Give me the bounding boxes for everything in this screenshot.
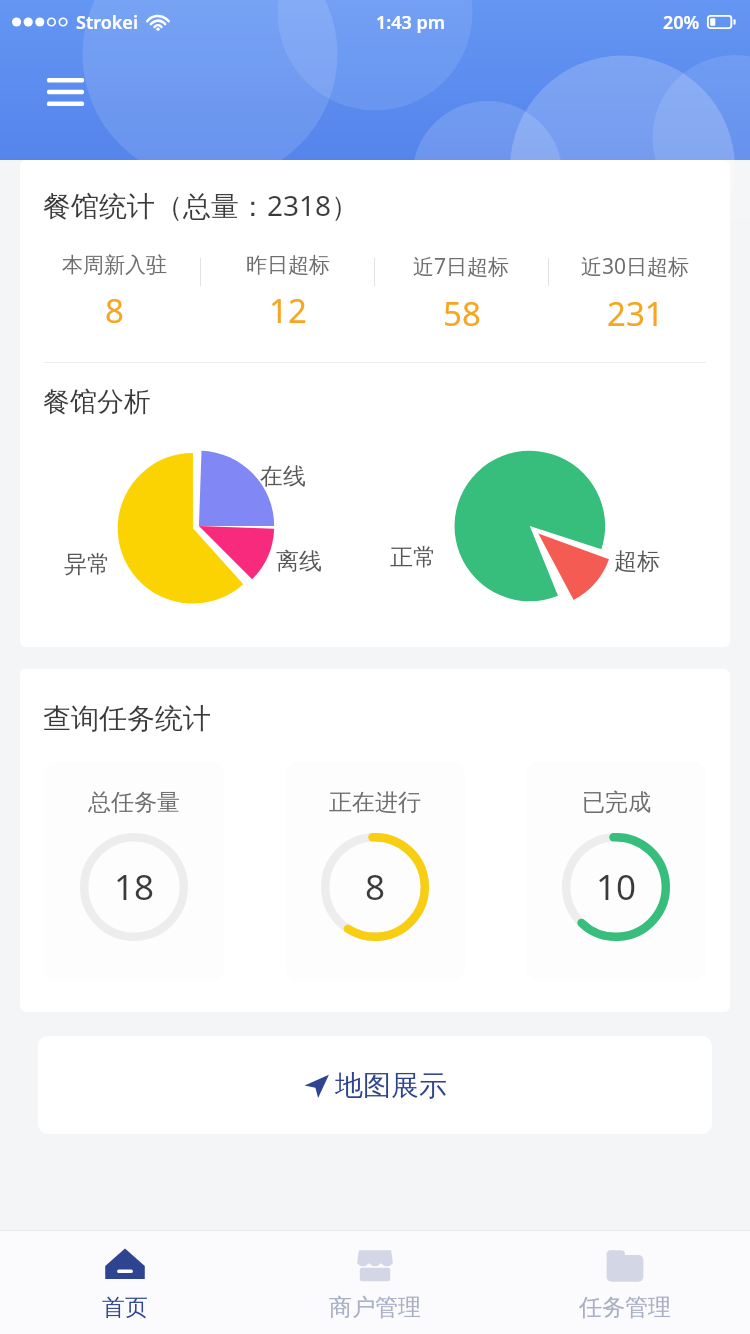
- button[interactable]: 正在进行: [285, 762, 465, 980]
- staticText: 首页: [102, 1293, 148, 1322]
- staticText: 离线: [276, 547, 322, 576]
- staticText: 在线: [260, 462, 306, 491]
- staticText: 地图展示: [335, 1068, 447, 1103]
- button[interactable]: 已完成: [526, 762, 706, 980]
- staticText: 正常: [390, 543, 436, 572]
- staticText: 18: [114, 863, 155, 911]
- staticText: 8: [365, 863, 386, 911]
- staticText: 总任务量: [88, 788, 180, 817]
- staticText: 超标: [614, 547, 660, 576]
- button[interactable]: Home: [0, 1231, 250, 1334]
- staticText: 20%: [663, 10, 700, 35]
- staticText: 异常: [64, 550, 110, 579]
- staticText: 餐馆分析: [43, 385, 151, 419]
- staticText: 10: [596, 863, 637, 911]
- staticText: 餐馆统计（总量：2318）: [43, 186, 360, 224]
- button[interactable]: 地图展示: [38, 1036, 712, 1134]
- staticText: 8: [105, 288, 124, 333]
- staticText: Strokei: [76, 10, 138, 35]
- staticText: 58: [443, 291, 481, 336]
- staticText: 12: [269, 288, 307, 333]
- button[interactable]: Merchant management: [250, 1231, 500, 1334]
- staticText: 任务管理: [579, 1293, 671, 1322]
- button[interactable]: Task management: [500, 1231, 750, 1334]
- button[interactable]: Open navigation menu: [30, 62, 100, 122]
- staticText: 本周新入驻: [62, 252, 167, 278]
- staticText: 昨日超标: [246, 252, 330, 278]
- staticText: 正在进行: [329, 788, 421, 817]
- staticText: 商户管理: [329, 1293, 421, 1322]
- staticText: 近30日超标: [581, 252, 690, 281]
- staticText: 1:43 pm: [376, 10, 446, 35]
- staticText: 已完成: [582, 788, 651, 817]
- staticText: 231: [607, 291, 664, 336]
- staticText: 查询任务统计: [43, 701, 211, 736]
- staticText: 近7日超标: [413, 252, 510, 281]
- button[interactable]: 总任务量: [44, 762, 224, 980]
